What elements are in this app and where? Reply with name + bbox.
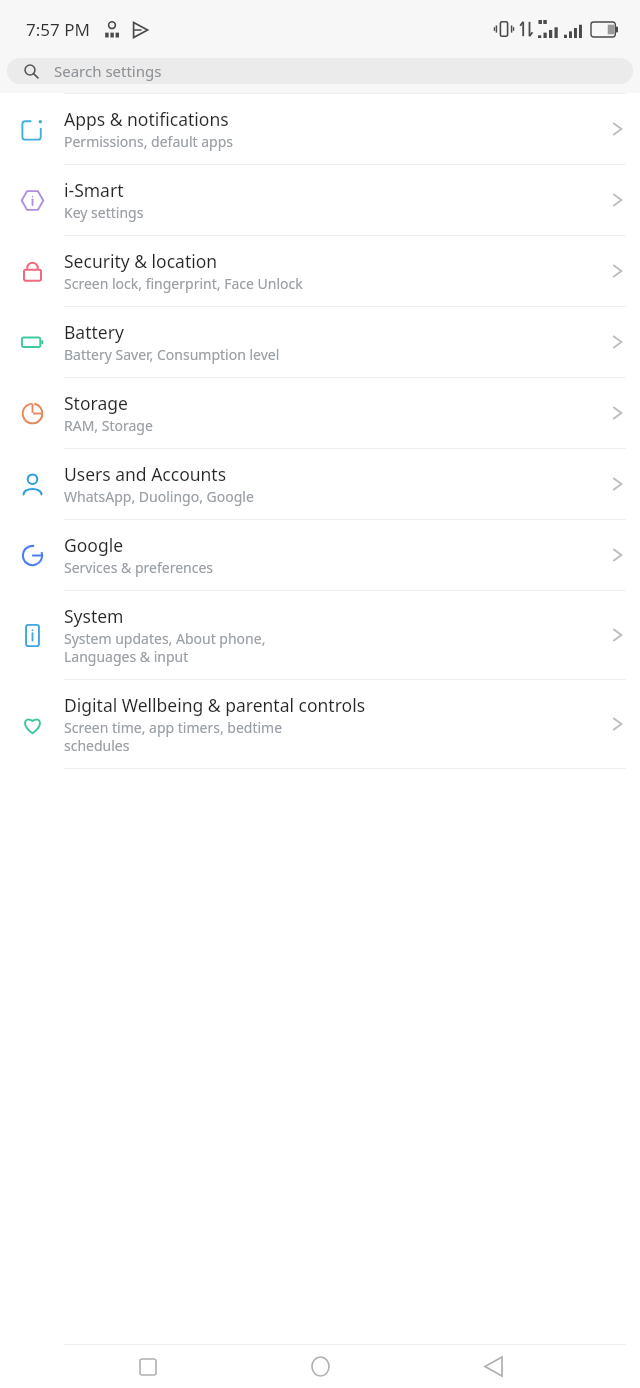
staticText: Permissions, default apps xyxy=(64,132,234,151)
button[interactable]: Google xyxy=(0,520,640,590)
staticText: Screen lock, fingerprint, Face Unlock xyxy=(64,274,303,293)
button[interactable]: Storage xyxy=(0,378,640,448)
staticText: Search settings xyxy=(54,61,162,81)
staticText: 7:57 PM xyxy=(26,18,90,41)
staticText: System xyxy=(64,604,124,628)
button[interactable]: i-Smart xyxy=(0,165,640,235)
button[interactable]: Users and Accounts xyxy=(0,449,640,519)
staticText: RAM, Storage xyxy=(64,416,153,435)
staticText: Battery Saver, Consumption level xyxy=(64,345,280,364)
staticText: Apps & notifications xyxy=(64,107,229,131)
staticText: i-Smart xyxy=(64,178,124,202)
button[interactable]: Apps & notifications xyxy=(0,94,640,164)
staticText: Security & location xyxy=(64,249,218,273)
button[interactable]: Home xyxy=(295,1345,345,1388)
staticText: Users and Accounts xyxy=(64,462,227,486)
button[interactable]: Battery xyxy=(0,307,640,377)
staticText: Battery xyxy=(64,320,124,344)
button[interactable]: System xyxy=(0,591,640,679)
staticText: System updates, About phone, Languages &… xyxy=(64,629,266,666)
button[interactable]: Security & location xyxy=(0,236,640,306)
staticText: Screen time, app timers, bedtime schedul… xyxy=(64,718,283,755)
staticText: Storage xyxy=(64,391,128,415)
staticText: Key settings xyxy=(64,203,144,222)
staticText: Services & preferences xyxy=(64,558,214,577)
button[interactable]: Digital Wellbeing & parental controls xyxy=(0,680,640,768)
button[interactable]: Back xyxy=(468,1345,518,1388)
button[interactable]: Search settings xyxy=(7,58,633,84)
button[interactable]: Recents xyxy=(123,1345,173,1388)
staticText: WhatsApp, Duolingo, Google xyxy=(64,487,254,506)
staticText: Digital Wellbeing & parental controls xyxy=(64,693,366,717)
staticText: Google xyxy=(64,533,124,557)
